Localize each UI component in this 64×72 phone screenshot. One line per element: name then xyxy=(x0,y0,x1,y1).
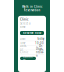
staticText: Walk in Clinic xyxy=(22,5,42,8)
staticText: Downtown xyxy=(36,47,44,57)
staticText: 10:00 xyxy=(35,41,44,45)
button[interactable]: Confirm xyxy=(20,57,36,60)
staticText: Reserve now xyxy=(23,31,41,35)
staticText: Date xyxy=(20,37,26,40)
button[interactable]: Reserve now xyxy=(20,31,44,35)
staticText: Dr. Lee xyxy=(39,44,44,51)
staticText: Doctor xyxy=(20,44,27,51)
staticText: Today xyxy=(37,37,44,40)
staticText: Clinic xyxy=(20,18,28,21)
staticText: Clinic xyxy=(20,50,28,54)
staticText: Select a time xyxy=(20,22,30,29)
staticText: Reservation xyxy=(23,8,40,12)
staticText: Confirm xyxy=(23,55,33,62)
staticText: Time xyxy=(20,41,26,45)
